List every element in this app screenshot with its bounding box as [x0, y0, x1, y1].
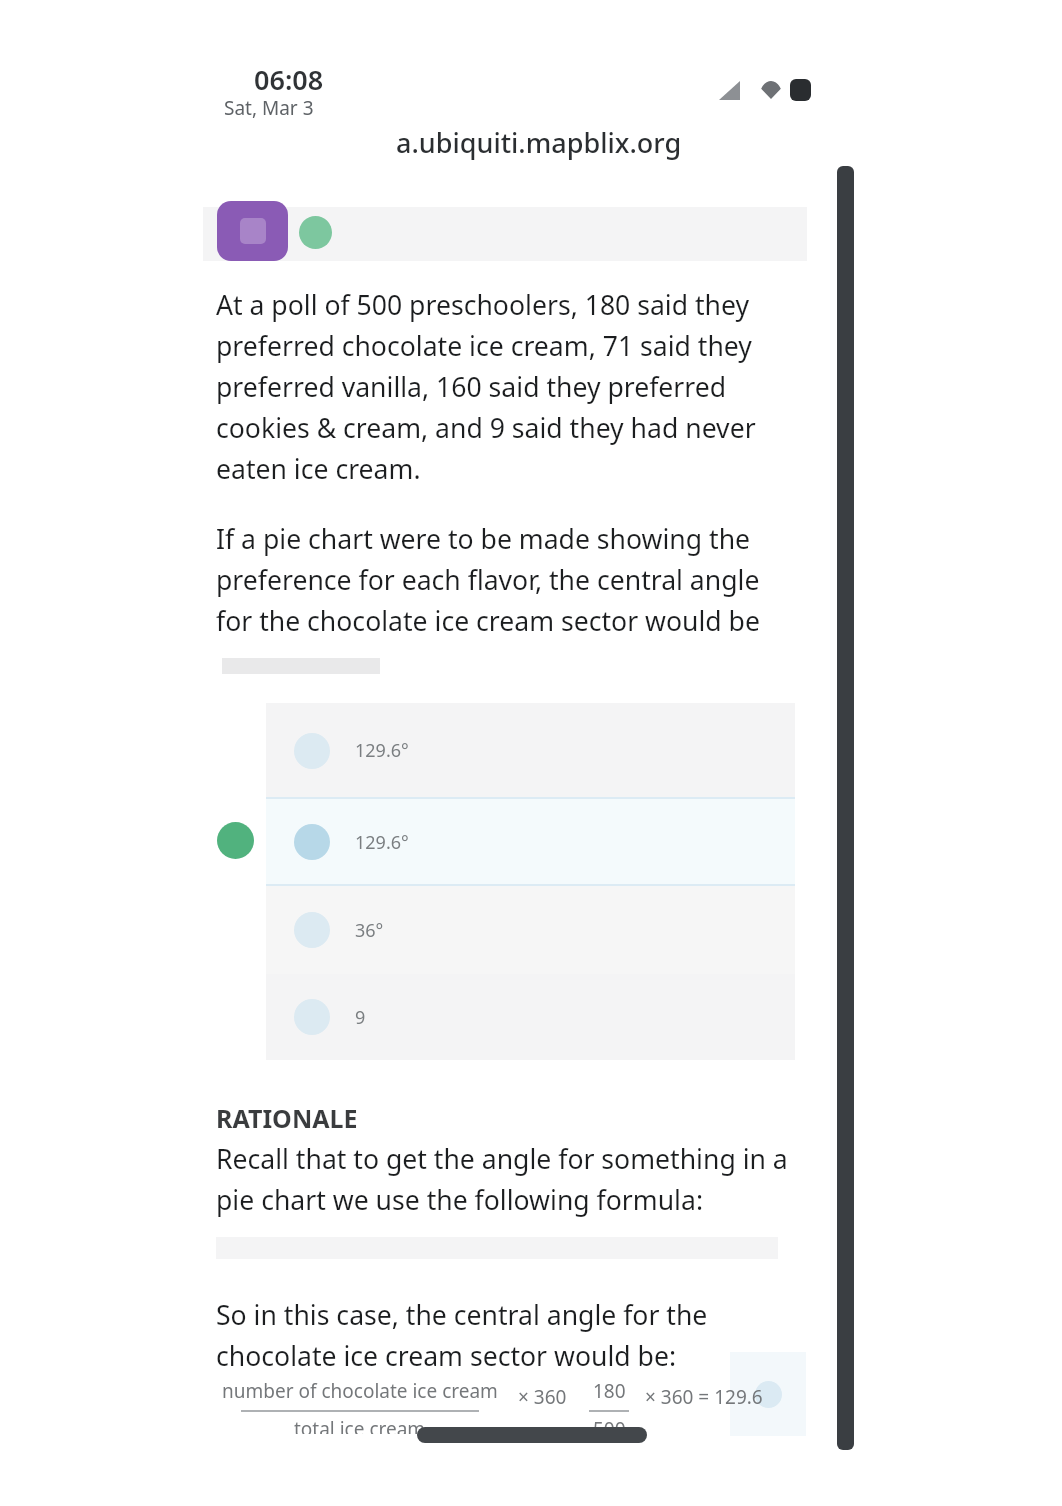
staticText: preferred chocolate ice cream, 71 said t… — [216, 328, 752, 369]
staticText: 180 — [593, 1378, 626, 1404]
staticText: 06:08 — [254, 61, 324, 98]
staticText: total ice cream — [294, 1416, 426, 1434]
staticText: eaten ice cream. — [216, 451, 421, 492]
staticText: number of chocolate ice cream — [222, 1378, 498, 1404]
button[interactable]: 36° — [266, 886, 795, 974]
staticText: × 360 = 129.6 — [645, 1384, 763, 1410]
button[interactable]: App menu — [217, 201, 288, 261]
staticText: 500 — [593, 1416, 626, 1434]
staticText: 129.6° — [355, 830, 409, 855]
staticText: 129.6° — [355, 738, 409, 763]
staticText: Sat, Mar 3 — [224, 95, 314, 121]
staticText: × 360 — [518, 1384, 567, 1410]
button[interactable]: 129.6° — [266, 798, 795, 886]
staticText: for the chocolate ice cream sector would… — [216, 603, 760, 644]
staticText: 9 — [355, 1005, 366, 1030]
button[interactable]: 129.6° — [266, 703, 795, 798]
staticText: chocolate ice cream sector would be: — [216, 1338, 677, 1379]
staticText: 36° — [355, 918, 384, 943]
button[interactable]: Help — [730, 1352, 806, 1436]
staticText: RATIONALE — [216, 1101, 358, 1135]
staticText: preference for each flavor, the central … — [216, 562, 760, 603]
button[interactable]: Correct answer — [217, 822, 254, 859]
staticText: cookies & cream, and 9 said they had nev… — [216, 410, 756, 451]
button[interactable]: 9 — [266, 974, 795, 1060]
button[interactable]: Status indicator — [299, 216, 332, 249]
staticText: preferred vanilla, 160 said they preferr… — [216, 369, 727, 410]
staticText: So in this case, the central angle for t… — [216, 1297, 708, 1338]
staticText: At a poll of 500 preschoolers, 180 said … — [216, 287, 750, 328]
staticText: pie chart we use the following formula: — [216, 1182, 704, 1223]
staticText: If a pie chart were to be made showing t… — [216, 521, 751, 562]
staticText: a.ubiquiti.mapblix.org — [396, 124, 682, 160]
staticText: Recall that to get the angle for somethi… — [216, 1141, 788, 1182]
button[interactable]: a.ubiquiti.mapblix.org — [396, 124, 682, 160]
